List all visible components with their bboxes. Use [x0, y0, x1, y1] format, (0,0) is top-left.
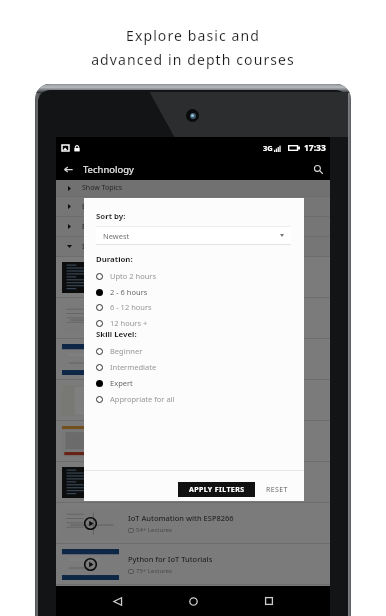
staticText: 2 - 6 hours	[110, 287, 148, 297]
staticText: Electronics	[82, 202, 118, 212]
button[interactable]: Internet of Things	[56, 237, 330, 256]
button[interactable]: Embedded	[56, 217, 330, 236]
staticText: Arduino Programming Tutorial	[128, 267, 238, 277]
button[interactable]: 2 - 6 hours	[84, 284, 304, 300]
staticText: Raspberry Pi for Beginners	[128, 349, 224, 359]
staticText: 75+ Lectures	[136, 567, 172, 575]
staticText: 12 hours +	[110, 318, 148, 328]
button[interactable]: RESET	[262, 482, 292, 497]
staticText: RESET	[266, 485, 288, 495]
staticText: Intermediate	[110, 362, 157, 372]
button[interactable]: Arduino Programming Tutorial	[56, 257, 330, 297]
staticText: IoT Automation with ESP8266	[128, 513, 234, 523]
staticText: Beginner	[110, 346, 143, 356]
staticText: Newest	[103, 231, 130, 241]
staticText: Show Topics	[82, 183, 123, 193]
button[interactable]: Expert	[84, 375, 304, 391]
staticText: Upto 2 hours	[110, 271, 157, 281]
staticText: Python for IoT Tutorials	[128, 554, 213, 564]
button[interactable]: Search	[311, 159, 325, 180]
staticText: 54+ Lectures	[136, 526, 172, 534]
staticText: Appropriate for all	[110, 394, 175, 404]
button[interactable]: Back	[62, 159, 74, 180]
button[interactable]: Wireless Networking Course	[56, 421, 330, 461]
button[interactable]: MQTT Protocol Introduction	[56, 462, 330, 502]
staticText: Embedded	[82, 222, 118, 232]
staticText: Internet of Things	[82, 242, 142, 252]
button[interactable]: Back	[102, 586, 132, 616]
button[interactable]: IoT Automation with ESP8266	[56, 503, 330, 543]
button[interactable]: Beginner	[84, 343, 304, 359]
staticText: Sort by:	[96, 211, 126, 222]
staticText: 88+ Lectures	[136, 362, 172, 370]
staticText: Sensor Interfacing Basics	[128, 390, 219, 400]
button[interactable]: Electronics	[56, 197, 330, 216]
button[interactable]: Intermediate	[84, 359, 304, 375]
staticText: Technology	[83, 163, 134, 176]
staticText: 17:33	[304, 142, 326, 154]
button[interactable]: Recent apps	[254, 586, 284, 616]
button[interactable]: 6 - 12 hours	[84, 299, 304, 315]
button[interactable]: Home	[178, 586, 208, 616]
button[interactable]: Sensor Interfacing Basics	[56, 380, 330, 420]
staticText: PCB Design using Eagle	[128, 308, 213, 318]
staticText: Duration:	[96, 254, 133, 265]
button[interactable]: Newest	[96, 226, 291, 245]
button[interactable]: Appropriate for all	[84, 391, 304, 407]
staticText: Skill Level:	[96, 329, 137, 340]
staticText: 3G	[263, 143, 273, 153]
staticText: 64+ Lectures	[136, 321, 172, 329]
staticText: Explore basic and	[126, 26, 260, 45]
staticText: Expert	[110, 378, 133, 388]
staticText: APPLY FILTERS	[189, 485, 245, 495]
button[interactable]: Python for IoT Tutorials	[56, 544, 330, 584]
button[interactable]: Show Topics	[56, 180, 330, 196]
button[interactable]: Raspberry Pi for Beginners	[56, 339, 330, 379]
staticText: 6 - 12 hours	[110, 302, 152, 312]
button[interactable]: 12 hours +	[84, 315, 304, 331]
button[interactable]: PCB Design using Eagle	[56, 298, 330, 338]
button[interactable]: APPLY FILTERS	[178, 482, 255, 497]
staticText: advanced in depth courses	[91, 50, 295, 69]
button[interactable]: Upto 2 hours	[84, 268, 304, 284]
